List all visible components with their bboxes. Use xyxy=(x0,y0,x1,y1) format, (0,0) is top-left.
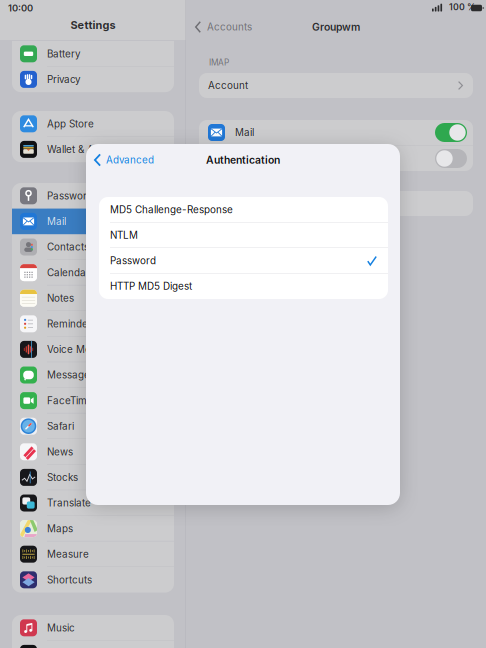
staticText: Passwords xyxy=(47,190,98,202)
staticText: 100 % xyxy=(449,2,476,12)
staticText: Advanced xyxy=(106,154,154,166)
staticText: Groupwm xyxy=(312,21,360,33)
button[interactable]: News xyxy=(12,439,174,465)
staticText: Account xyxy=(208,79,248,91)
button[interactable]: Music xyxy=(12,615,174,641)
staticText: IMAP xyxy=(209,57,229,67)
staticText: Voice Memos xyxy=(47,343,111,355)
staticText: Reminders xyxy=(47,318,97,330)
button[interactable]: Voice Memos xyxy=(12,337,174,362)
button[interactable]: NTLM xyxy=(99,222,388,248)
button[interactable]: Mail xyxy=(435,123,467,142)
button[interactable]: Password xyxy=(99,248,388,273)
button[interactable]: MD5 Challenge-Response xyxy=(99,197,388,222)
button[interactable]: Wallet & Apple Pay xyxy=(12,137,174,162)
button[interactable]: FaceTime xyxy=(12,388,174,413)
staticText: Mail xyxy=(47,215,66,227)
button[interactable]: Shortcuts xyxy=(12,567,174,593)
staticText: Authentication xyxy=(206,154,280,166)
staticText: News xyxy=(47,446,73,458)
staticText: Maps xyxy=(47,523,73,534)
staticText: Calendar xyxy=(47,267,90,278)
button[interactable]: Notes xyxy=(435,149,467,168)
staticText: App Store xyxy=(47,118,94,130)
staticText: Music xyxy=(47,622,75,634)
staticText: NTLM xyxy=(110,229,138,241)
staticText: HTTP MD5 Digest xyxy=(110,280,192,292)
staticText: Measure xyxy=(47,548,89,560)
button[interactable]: Mail xyxy=(12,209,174,234)
staticText: Safari xyxy=(47,420,74,432)
button[interactable]: tv xyxy=(12,641,174,648)
button[interactable]: Battery xyxy=(12,41,174,67)
staticText: FaceTime xyxy=(47,395,93,406)
staticText: Shortcuts xyxy=(47,574,92,586)
staticText: Stocks xyxy=(47,471,78,483)
button[interactable]: Privacy xyxy=(12,67,174,92)
button[interactable]: Safari xyxy=(12,413,174,439)
button[interactable]: Translate xyxy=(12,490,174,516)
staticText: Contacts xyxy=(47,241,89,253)
button[interactable]: Account xyxy=(199,73,473,98)
staticText: Notes xyxy=(47,292,74,304)
button[interactable]: App Store xyxy=(12,111,174,137)
button[interactable]: Contacts xyxy=(12,234,174,260)
button[interactable]: Maps xyxy=(12,516,174,541)
staticText: 10:00 xyxy=(8,2,33,14)
button[interactable]: Messages xyxy=(12,362,174,388)
button[interactable]: Calendar xyxy=(12,260,174,285)
button[interactable]: Advanced xyxy=(94,147,154,173)
staticText: Wallet & Apple Pay xyxy=(47,143,134,155)
staticText: Privacy xyxy=(47,73,81,85)
button[interactable]: Notes xyxy=(12,285,174,311)
staticText: Translate xyxy=(47,497,91,509)
button[interactable]: Passwords xyxy=(12,183,174,209)
button[interactable]: Reminders xyxy=(12,311,174,337)
staticText: Messages xyxy=(47,369,95,381)
button[interactable]: Stocks xyxy=(12,465,174,490)
button[interactable]: Accounts xyxy=(195,16,252,38)
staticText: Accounts xyxy=(207,21,252,33)
button[interactable]: Measure xyxy=(12,541,174,567)
staticText: Mail xyxy=(235,126,254,138)
staticText: Password xyxy=(110,255,156,267)
staticText: Battery xyxy=(47,48,81,60)
staticText: MD5 Challenge-Response xyxy=(110,204,233,216)
staticText: Settings xyxy=(70,18,115,32)
button[interactable]: HTTP MD5 Digest xyxy=(99,273,388,299)
